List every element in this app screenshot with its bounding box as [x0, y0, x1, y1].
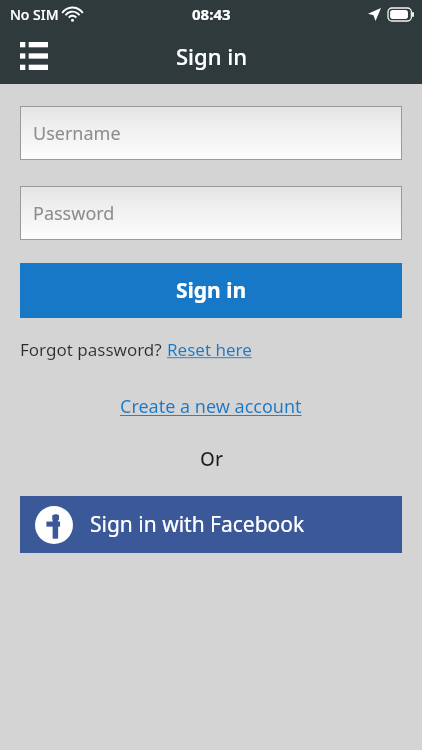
- staticText: Sign in: [176, 41, 247, 71]
- button[interactable]: Password: [20, 186, 402, 240]
- staticText: Create a new account: [120, 394, 302, 419]
- staticText: 08:43: [192, 4, 231, 24]
- staticText: Username: [33, 121, 121, 146]
- staticText: Reset here: [167, 338, 252, 361]
- button[interactable]: Sign in: [20, 263, 402, 318]
- button[interactable]: Forgot password?: [20, 338, 252, 361]
- button[interactable]: Username: [20, 106, 402, 160]
- staticText: Password: [33, 201, 115, 226]
- staticText: Forgot password?: [20, 338, 167, 361]
- button[interactable]: Menu: [12, 34, 56, 78]
- staticText: Sign in: [176, 276, 247, 305]
- staticText: Sign in with Facebook: [90, 510, 305, 539]
- staticText: Or: [200, 446, 223, 472]
- button[interactable]: Create a new account: [120, 394, 302, 419]
- button[interactable]: Sign in with Facebook: [20, 496, 402, 553]
- staticText: No SIM: [10, 5, 59, 24]
